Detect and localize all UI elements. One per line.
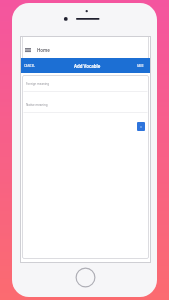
- button[interactable]: SAVE: [132, 61, 151, 71]
- button[interactable]: Menu: [22, 44, 33, 55]
- button[interactable]: Add vocable: [137, 122, 145, 131]
- staticText: Add Vocable: [74, 63, 101, 69]
- staticText: SAVE: [137, 64, 144, 68]
- staticText: CANCEL: [24, 64, 35, 68]
- staticText: Home: [37, 47, 50, 53]
- button[interactable]: CANCEL: [20, 61, 39, 71]
- staticText: Foreign meaning: [26, 82, 50, 86]
- staticText: Native meaning: [26, 103, 48, 107]
